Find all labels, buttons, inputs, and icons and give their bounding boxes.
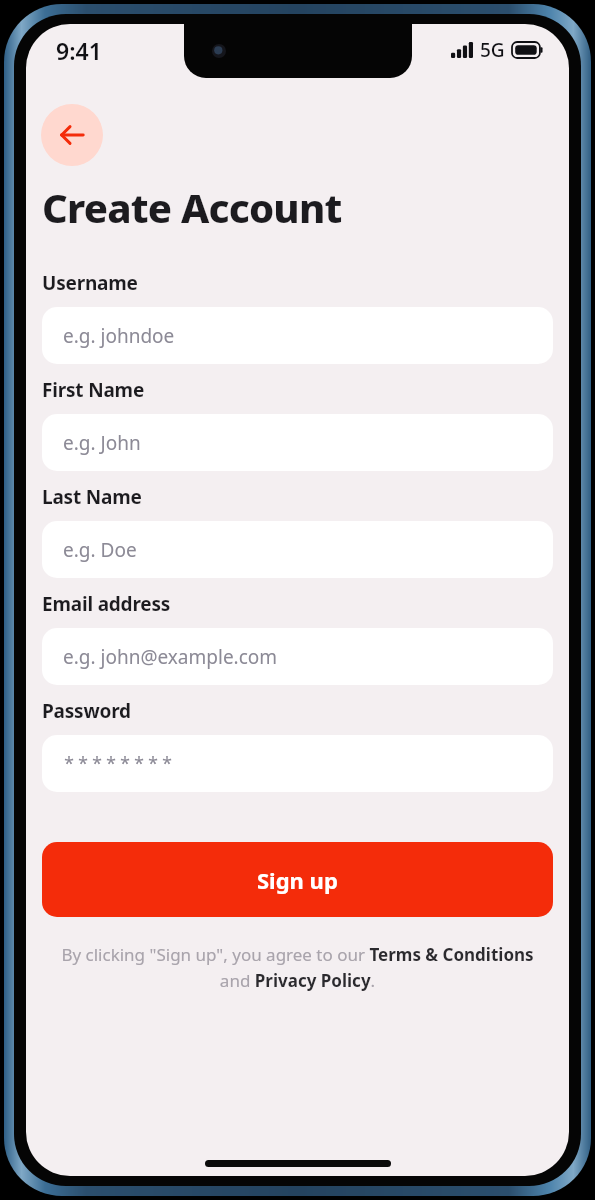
staticText: e.g. john@example.com [63,644,278,670]
button[interactable]: By clicking "Sign up", you agree to our … [60,943,535,992]
button[interactable]: e.g. johndoe [42,307,553,364]
button[interactable]: Sign up [42,842,553,917]
staticText: Create Account [42,180,342,234]
staticText: 5G [480,37,505,63]
staticText: e.g. Doe [63,537,137,563]
button[interactable]: e.g. John [42,414,553,471]
staticText: By clicking "Sign up", you agree to our … [60,943,535,992]
staticText: e.g. John [63,430,141,456]
staticText: Username [42,270,138,296]
button[interactable]: e.g. Doe [42,521,553,578]
button[interactable]: e.g. john@example.com [42,628,553,685]
button[interactable]: Back [41,104,103,166]
button[interactable]: ******** [42,735,553,792]
staticText: e.g. johndoe [63,323,175,349]
staticText: ******** [63,750,175,777]
staticText: Last Name [42,484,142,510]
staticText: 9:41 [56,35,102,66]
staticText: Email address [42,591,171,617]
staticText: First Name [42,377,145,403]
staticText: Sign up [257,865,338,895]
staticText: Password [42,698,131,724]
